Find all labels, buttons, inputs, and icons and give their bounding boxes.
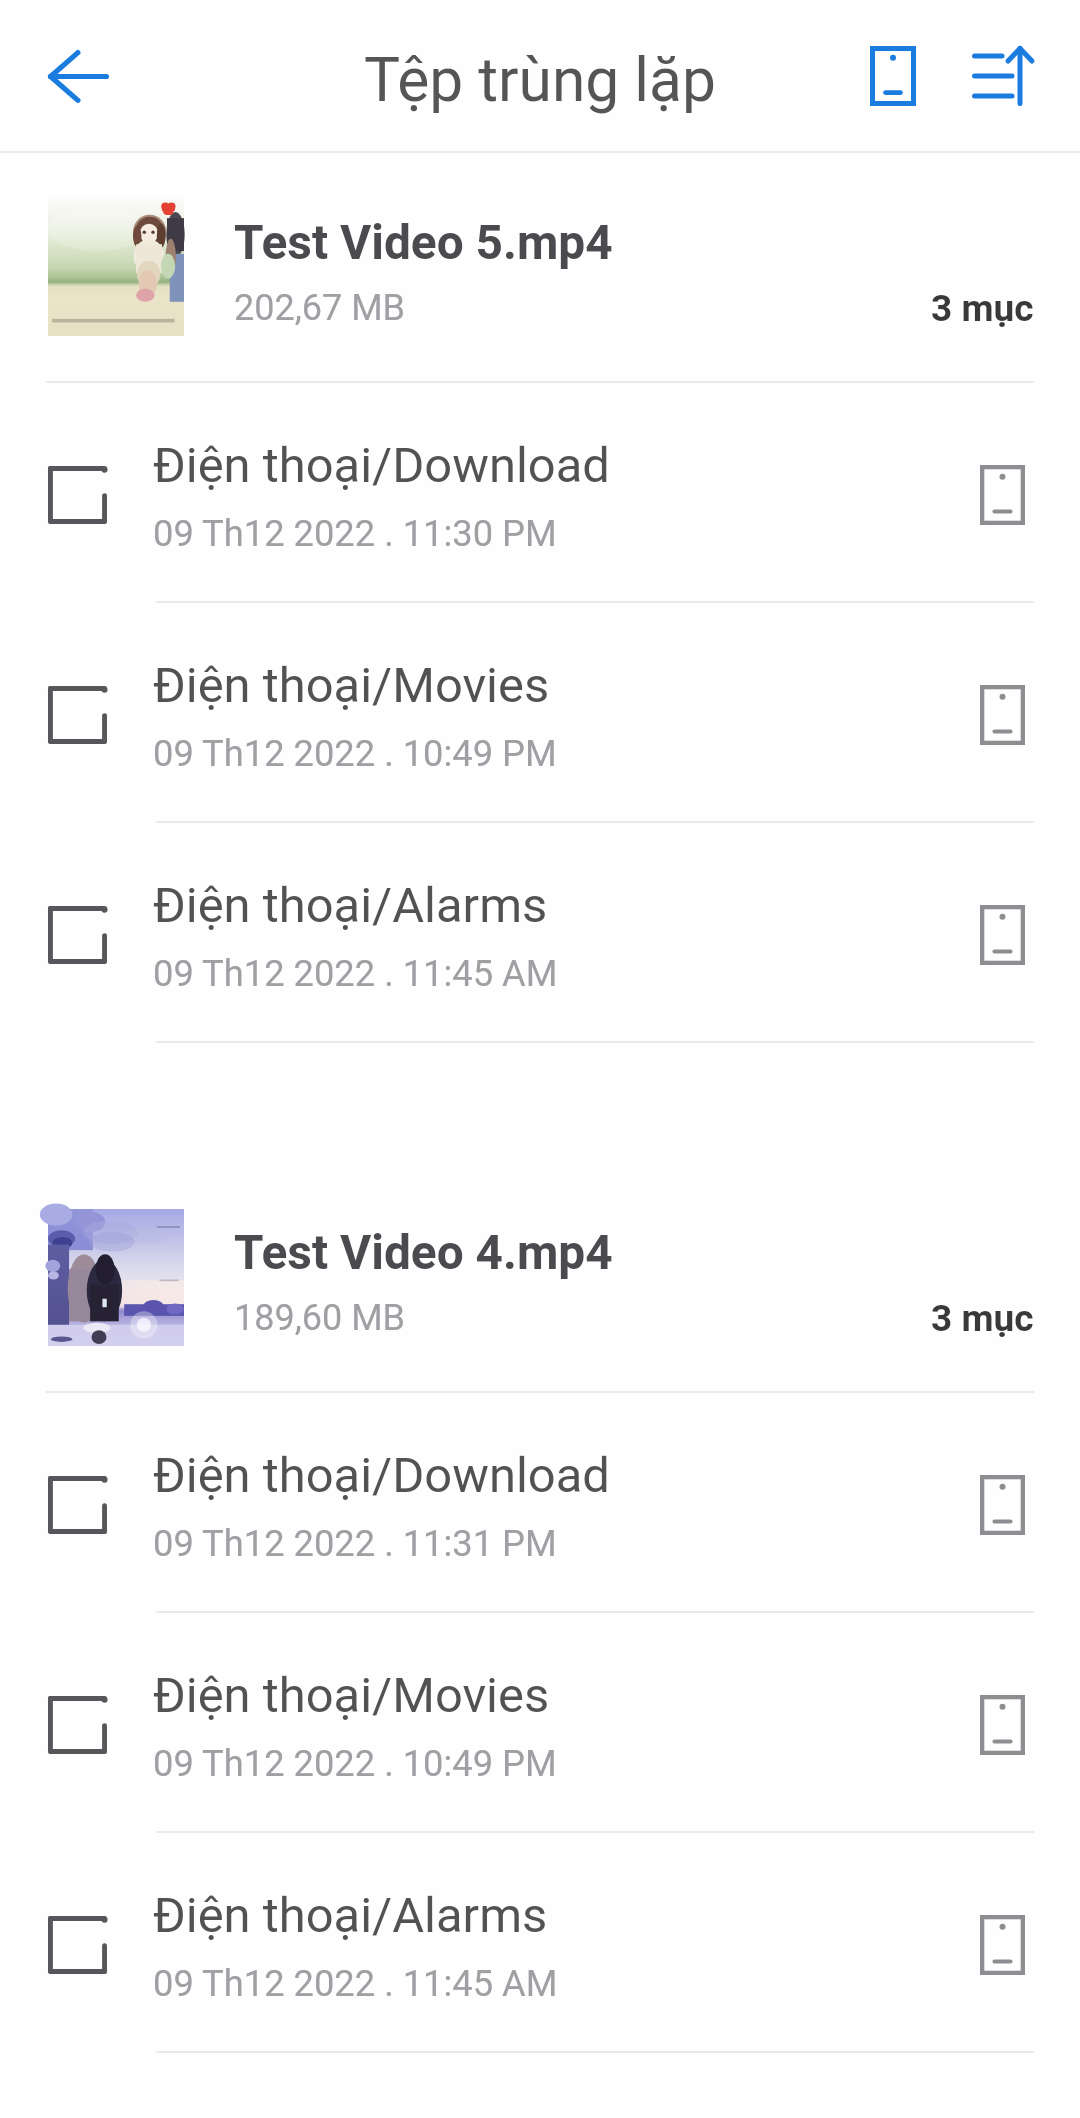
staticText: Test Video 5.mp4 xyxy=(234,215,613,271)
staticText: Điện thoại/Alarms xyxy=(153,1887,548,1944)
staticText: 3 mục xyxy=(931,1297,1034,1340)
button[interactable]: Test Video 5.mp4 xyxy=(0,153,1080,381)
staticText: 09 Th12 2022 . 11:45 AM xyxy=(153,1962,558,2005)
button[interactable]: Điện thoại/Movies xyxy=(0,1613,1080,1831)
staticText: Điện thoại/Alarms xyxy=(153,877,548,934)
button[interactable]: Điện thoại/Download xyxy=(0,383,1080,601)
staticText: 09 Th12 2022 . 11:45 AM xyxy=(153,952,558,995)
button[interactable]: Device storage xyxy=(842,0,944,152)
staticText: 09 Th12 2022 . 11:31 PM xyxy=(153,1522,557,1565)
staticText: 09 Th12 2022 . 10:49 PM xyxy=(153,1742,557,1785)
staticText: 09 Th12 2022 . 11:30 PM xyxy=(153,512,557,555)
button[interactable]: Sort xyxy=(944,0,1060,152)
button[interactable]: Điện thoại/Movies xyxy=(0,603,1080,821)
staticText: 09 Th12 2022 . 10:49 PM xyxy=(153,732,557,775)
staticText: Điện thoại/Download xyxy=(153,1447,610,1504)
button[interactable]: Test Video 4.mp4 xyxy=(0,1163,1080,1391)
button[interactable]: Điện thoại/Alarms xyxy=(0,1833,1080,2051)
staticText: Điện thoại/Download xyxy=(153,437,610,494)
staticText: Điện thoại/Movies xyxy=(153,1667,550,1724)
staticText: Tệp trùng lặp xyxy=(0,45,1080,116)
staticText: Điện thoại/Movies xyxy=(153,657,550,714)
button[interactable]: Back xyxy=(0,0,156,152)
staticText: 3 mục xyxy=(931,287,1034,330)
button[interactable]: Điện thoại/Download xyxy=(0,1393,1080,1611)
button[interactable]: Điện thoại/Alarms xyxy=(0,823,1080,1041)
staticText: 202,67 MB xyxy=(234,287,406,329)
staticText: 189,60 MB xyxy=(234,1297,406,1339)
staticText: Test Video 4.mp4 xyxy=(234,1225,613,1281)
